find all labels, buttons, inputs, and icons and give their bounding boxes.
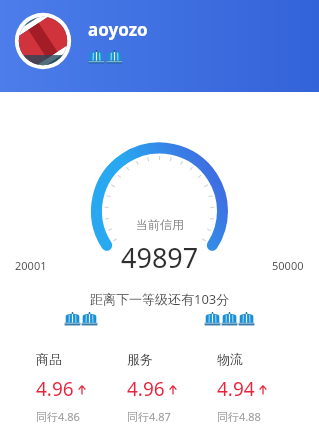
staticText: 商品 [36,351,62,367]
staticText: 49897 [121,239,199,276]
staticText: 4.96 [127,376,165,402]
staticText: 4.94 [217,376,255,402]
staticText: 同行4.88 [217,409,261,424]
staticText: 当前信用 [136,217,184,232]
staticText: 物流 [217,351,243,367]
button[interactable]: 物流 [217,351,307,424]
button[interactable]: Shop logo [11,9,75,73]
staticText: 同行4.87 [127,409,171,424]
staticText: 4.96 [36,376,74,402]
staticText: 20001 [15,258,47,273]
button[interactable]: Shop logo [0,0,319,92]
staticText: 服务 [127,351,153,367]
button[interactable]: 商品 [36,351,127,424]
staticText: 距离下一等级还有103分 [90,290,230,308]
staticText: 50000 [272,258,304,273]
button[interactable]: 服务 [127,351,217,424]
staticText: aoyozo [88,18,148,41]
staticText: 同行4.86 [36,409,80,424]
